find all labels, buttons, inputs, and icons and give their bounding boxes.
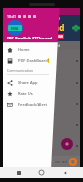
button[interactable]: App logo: [7, 20, 23, 36]
button[interactable]: Recent apps: [14, 168, 23, 177]
staticText: Feedback/Alert: [18, 102, 47, 107]
staticText: IES English SIFboard Solution: [7, 36, 53, 39]
staticText: 10:41: [7, 14, 16, 19]
button[interactable]: Share App: [3, 77, 51, 88]
button[interactable]: Add: [61, 138, 73, 150]
button[interactable]: rcise: [3, 50, 80, 72]
button[interactable]: Home: [3, 44, 51, 55]
staticText: PDF DashBoard: [18, 58, 48, 63]
staticText: Communication: [7, 68, 34, 73]
staticText: ver ad: [55, 159, 67, 164]
button[interactable]: [3, 135, 80, 156]
button[interactable]: Feedback/Alert: [3, 99, 51, 110]
button[interactable]: ms: [3, 93, 80, 114]
staticText: 1: [48, 59, 49, 63]
staticText: Rate Us: [18, 91, 33, 96]
staticText: dhd: [49, 22, 65, 33]
staticText: Share App: [18, 80, 38, 85]
button[interactable]: Home: [37, 168, 46, 177]
other: Advertisement: [69, 158, 77, 166]
button[interactable]: K-200: [48, 15, 80, 41]
button[interactable]: Back: [60, 168, 69, 177]
staticText: ROOM: [50, 34, 63, 39]
staticText: K-200: [49, 16, 60, 21]
staticText: rcise: [47, 59, 56, 64]
button[interactable]: PDF DashBoard: [3, 55, 51, 66]
staticText: ENG: [11, 26, 19, 31]
button[interactable]: Rate Us: [3, 88, 51, 99]
staticText: Home: [18, 47, 30, 52]
button[interactable]: ling: [3, 72, 80, 93]
button[interactable]: ver ad: [3, 156, 80, 167]
staticText: board: [49, 43, 61, 48]
button[interactable]: [3, 114, 80, 135]
